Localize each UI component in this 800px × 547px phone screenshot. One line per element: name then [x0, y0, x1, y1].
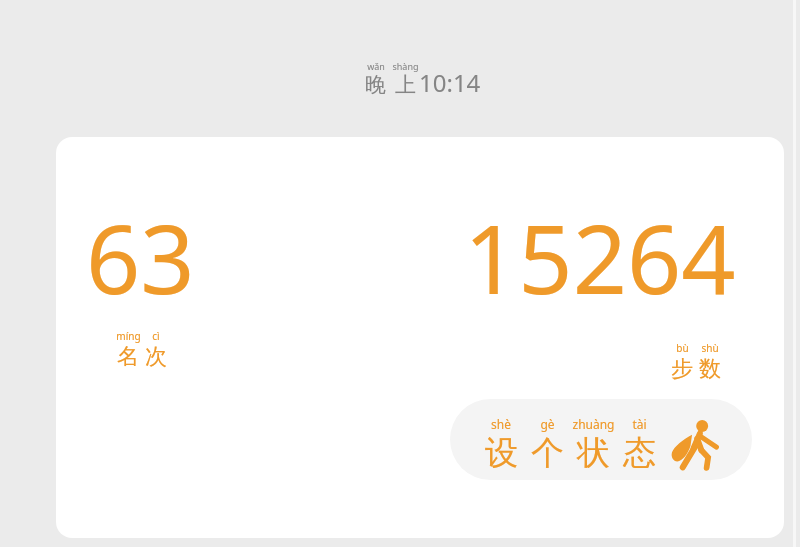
staticText: 15264 [464, 192, 736, 321]
staticText: shù [701, 341, 719, 355]
staticText: shè [491, 416, 511, 432]
other: 设个状态 [665, 418, 717, 470]
staticText: cì [152, 329, 160, 343]
staticText: 10:14 [419, 66, 481, 99]
staticText: wǎn [367, 60, 385, 72]
staticText: 名 [117, 343, 139, 371]
staticText: bù [676, 341, 689, 355]
staticText: 态 [623, 432, 656, 474]
staticText: 步 [671, 355, 693, 383]
staticText: 设 [485, 432, 518, 474]
staticText: míng [116, 329, 141, 343]
staticText: 上 [395, 72, 416, 98]
staticText: 次 [145, 343, 167, 371]
button[interactable]: 63 [78, 185, 203, 370]
staticText: 状 [577, 432, 610, 474]
staticText: zhuàng [572, 416, 615, 432]
button[interactable]: shè [450, 399, 752, 480]
staticText: gè [540, 416, 555, 432]
staticText: 个 [531, 432, 564, 474]
staticText: shàng [392, 60, 419, 72]
staticText: 数 [699, 355, 721, 383]
staticText: 63 [86, 192, 195, 321]
staticText: tài [632, 416, 647, 432]
button[interactable]: 15264 [456, 185, 744, 370]
staticText: 晚 [365, 72, 386, 98]
